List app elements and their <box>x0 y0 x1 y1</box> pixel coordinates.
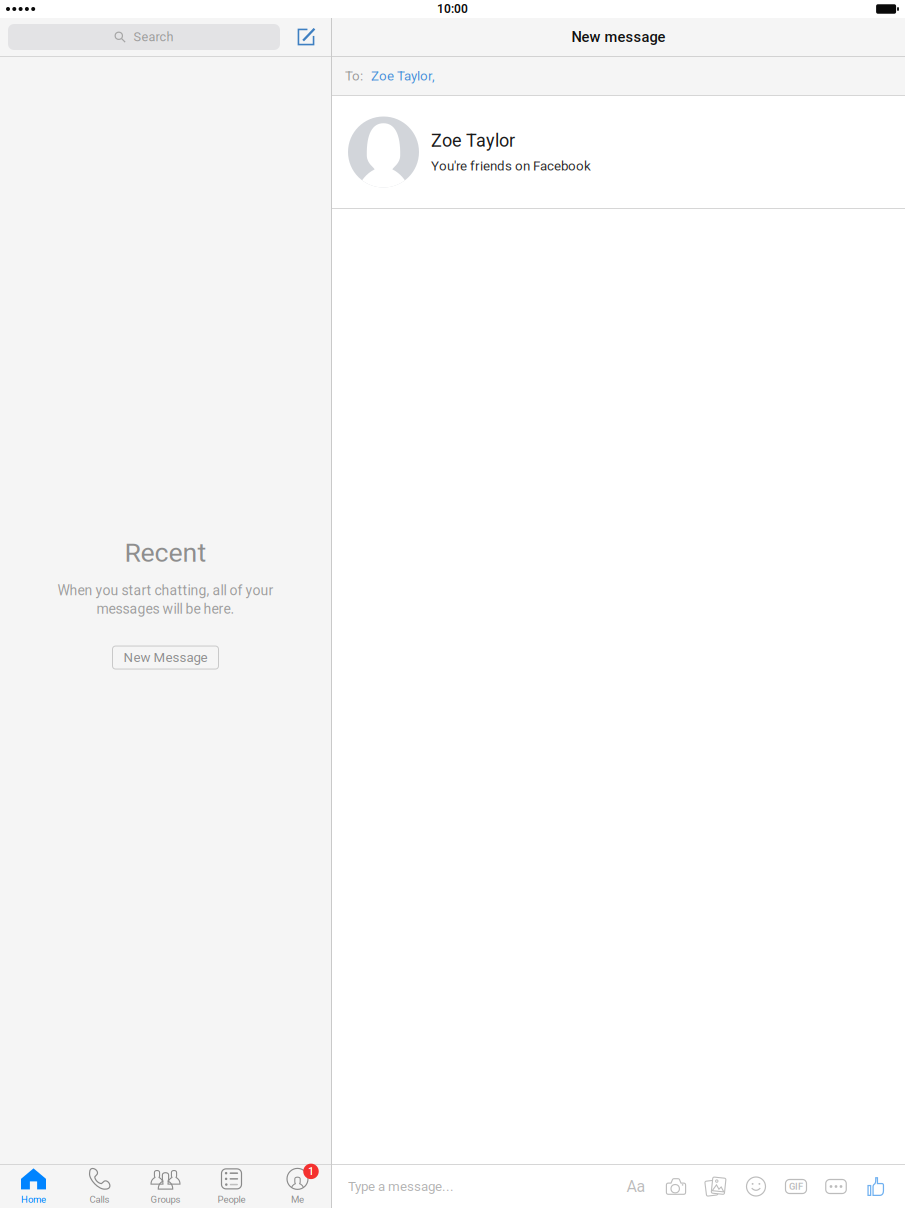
staticText: Recent <box>124 537 206 568</box>
staticText: GIF <box>789 1181 803 1192</box>
staticText: 10:00 <box>437 2 468 16</box>
button[interactable]: Zoe Taylor, <box>371 68 435 84</box>
button[interactable]: Camera <box>656 1173 696 1199</box>
staticText: To: <box>345 68 363 84</box>
button[interactable]: People <box>198 1165 264 1208</box>
staticText: Aa <box>626 1177 645 1196</box>
button[interactable]: Zoe Taylor <box>332 96 905 208</box>
staticText: New Message <box>123 650 207 665</box>
staticText: Search <box>133 30 173 44</box>
button[interactable]: New message <box>289 22 323 52</box>
button[interactable]: Stickers <box>736 1173 776 1199</box>
button[interactable]: New Message <box>112 646 218 669</box>
button[interactable]: Home <box>0 1165 66 1208</box>
button[interactable]: Send like <box>856 1173 896 1199</box>
staticText: messages will be here. <box>96 601 234 617</box>
button[interactable]: Text formatting <box>616 1173 656 1199</box>
staticText: Zoe Taylor, <box>371 68 435 84</box>
button[interactable]: Calls <box>66 1165 132 1208</box>
button[interactable]: More <box>816 1173 856 1199</box>
staticText: Calls <box>89 1194 109 1205</box>
button[interactable]: Photos <box>696 1173 736 1199</box>
staticText: Me <box>291 1194 304 1205</box>
staticText: New message <box>571 28 665 46</box>
staticText: 1 <box>308 1165 314 1178</box>
staticText: Type a message... <box>348 1179 454 1194</box>
staticText: Home <box>21 1194 46 1205</box>
staticText: Groups <box>150 1194 180 1205</box>
button[interactable]: 1 <box>264 1165 330 1208</box>
staticText: People <box>217 1194 245 1205</box>
staticText: Zoe Taylor <box>431 130 515 151</box>
staticText: When you start chatting, all of your <box>57 582 273 599</box>
button[interactable]: GIF <box>776 1173 816 1199</box>
button[interactable]: Groups <box>132 1165 198 1208</box>
button[interactable]: Search <box>8 24 280 50</box>
staticText: You're friends on Facebook <box>431 158 591 174</box>
